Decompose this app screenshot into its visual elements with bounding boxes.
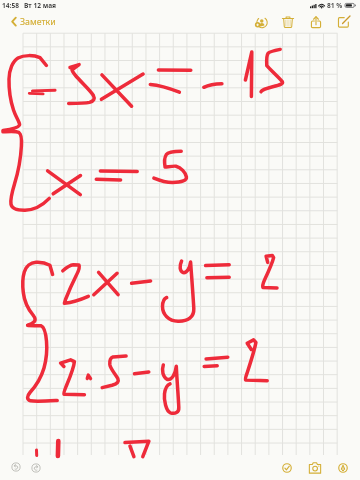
button[interactable]: New note xyxy=(332,11,355,33)
button[interactable]: Add people xyxy=(250,11,273,33)
staticText: Вт 12 мая xyxy=(24,1,57,10)
button[interactable]: Redo xyxy=(26,458,46,478)
button[interactable]: Заметки xyxy=(9,14,58,30)
staticText: 14:58 xyxy=(2,1,19,10)
button[interactable]: Markup xyxy=(333,458,353,478)
button[interactable]: Share xyxy=(304,11,327,33)
button[interactable]: Camera xyxy=(304,457,326,479)
button[interactable]: Delete xyxy=(276,11,299,33)
staticText: Заметки xyxy=(20,16,56,28)
staticText: 81 % xyxy=(327,1,343,10)
button[interactable]: Checklist xyxy=(277,458,297,478)
button[interactable]: Undo xyxy=(6,457,26,477)
